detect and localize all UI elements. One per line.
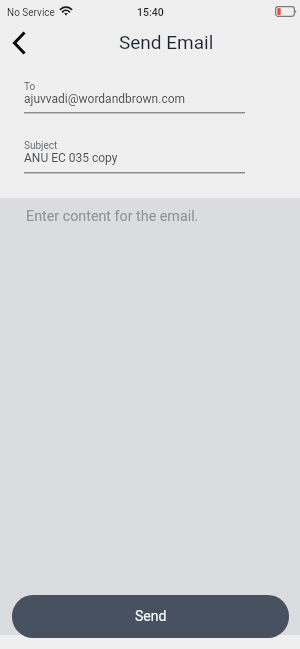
staticText: ANU EC 035 copy — [24, 151, 118, 165]
button[interactable]: To — [24, 78, 245, 116]
staticText: Send — [135, 608, 167, 624]
button[interactable]: Send — [12, 595, 289, 638]
staticText: No Service — [7, 7, 55, 19]
button[interactable]: Subject — [24, 137, 245, 176]
staticText: Subject — [24, 140, 58, 152]
staticText: Enter content for the email. — [26, 208, 199, 225]
staticText: ajuvvadi@wordandbrown.com — [24, 92, 186, 106]
button[interactable]: Email body — [0, 198, 300, 635]
staticText: Send Email — [119, 31, 214, 53]
staticText: 15:40 — [137, 6, 164, 18]
staticText: To — [24, 81, 36, 93]
button[interactable]: Back — [0, 24, 40, 68]
